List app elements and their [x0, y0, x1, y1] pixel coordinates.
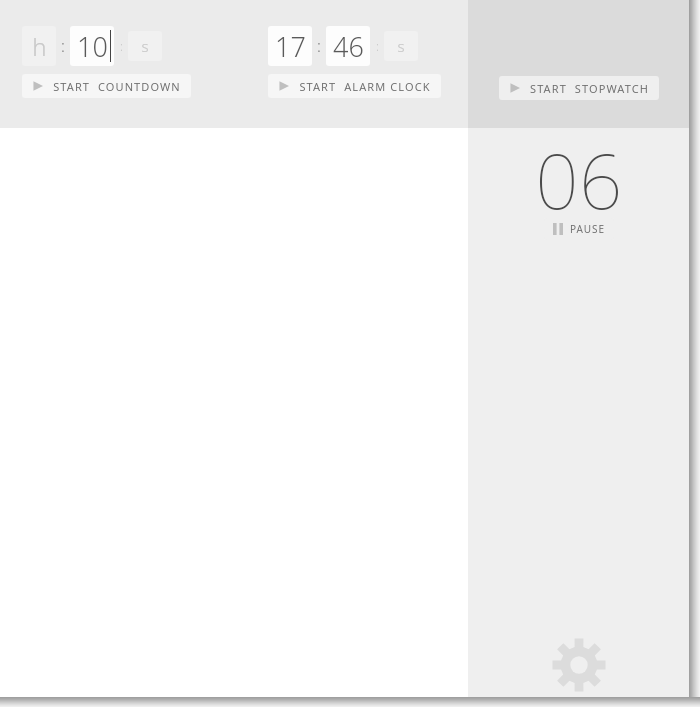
staticText: :	[120, 38, 123, 54]
staticText: h	[32, 30, 47, 63]
staticText: :	[61, 35, 65, 57]
button[interactable]: h	[22, 26, 56, 66]
button[interactable]: s	[384, 31, 418, 61]
staticText: :	[317, 35, 321, 57]
staticText: PAUSE	[570, 222, 605, 236]
staticText: START COUNTDOWN	[53, 79, 181, 94]
button[interactable]: PAUSE	[544, 218, 614, 240]
staticText: 17	[275, 28, 306, 65]
staticText: s	[397, 36, 405, 56]
staticText: :	[376, 38, 379, 54]
staticText: 46	[333, 28, 364, 65]
staticText: START ALARM CLOCK	[299, 79, 431, 94]
button[interactable]: s	[128, 31, 162, 61]
staticText: 10	[77, 28, 108, 65]
button[interactable]: Settings	[551, 637, 607, 693]
button[interactable]: START ALARM CLOCK	[268, 74, 441, 98]
button[interactable]: START STOPWATCH	[499, 76, 659, 100]
button[interactable]: 46	[326, 26, 370, 66]
staticText: 06	[535, 128, 623, 216]
staticText: START STOPWATCH	[530, 81, 649, 96]
staticText: s	[141, 36, 149, 56]
button[interactable]: START COUNTDOWN	[22, 74, 191, 98]
button[interactable]: 10	[70, 26, 114, 66]
button[interactable]: 17	[268, 26, 312, 66]
